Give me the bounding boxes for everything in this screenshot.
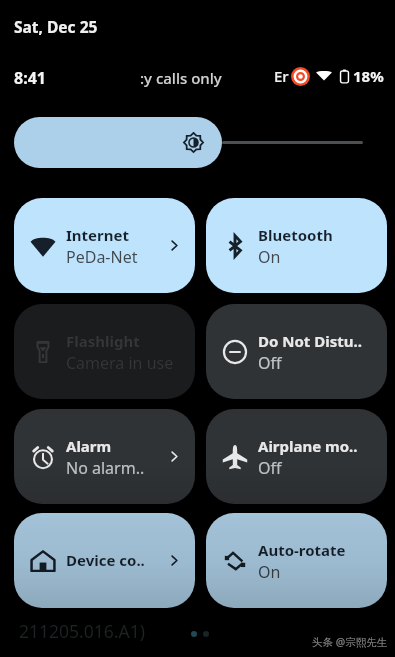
staticText: Device co.. xyxy=(66,550,145,570)
staticText: No alarm.. xyxy=(66,457,145,479)
staticText: Auto-rotate xyxy=(258,540,346,560)
staticText: :y calls only xyxy=(140,68,222,88)
staticText: Sat, Dec 25 xyxy=(14,16,98,37)
staticText: Do Not Distu.. xyxy=(258,331,362,351)
button[interactable]: Do Not Distu.. xyxy=(206,304,387,399)
staticText: 8:41 xyxy=(14,67,46,89)
staticText: Bluetooth xyxy=(258,225,333,245)
staticText: PeDa-Net xyxy=(66,246,138,268)
staticText: 头条 @宗熙先生 xyxy=(312,635,388,649)
staticText: Alarm xyxy=(66,436,112,456)
button[interactable]: Airplane mo.. xyxy=(206,409,387,504)
staticText: On xyxy=(258,246,281,268)
staticText: Off xyxy=(258,352,282,374)
button[interactable]: Internet xyxy=(14,198,195,293)
button[interactable]: Bluetooth xyxy=(206,198,387,293)
staticText: Internet xyxy=(66,225,129,245)
button[interactable]: Brightness xyxy=(14,117,222,168)
staticText: Airplane mo.. xyxy=(258,436,358,456)
button[interactable]: Flashlight xyxy=(14,304,195,399)
staticText: Camera in use xyxy=(66,352,174,374)
button[interactable]: Alarm xyxy=(14,409,195,504)
button[interactable]: Device co.. xyxy=(14,513,195,608)
staticText: 211205.016.A1) xyxy=(19,619,145,643)
staticText: Off xyxy=(258,457,282,479)
button[interactable]: Auto-rotate xyxy=(206,513,387,608)
staticText: Flashlight xyxy=(66,331,140,351)
staticText: On xyxy=(258,561,281,583)
staticText: Er xyxy=(274,66,289,86)
staticText: 18% xyxy=(353,66,384,86)
